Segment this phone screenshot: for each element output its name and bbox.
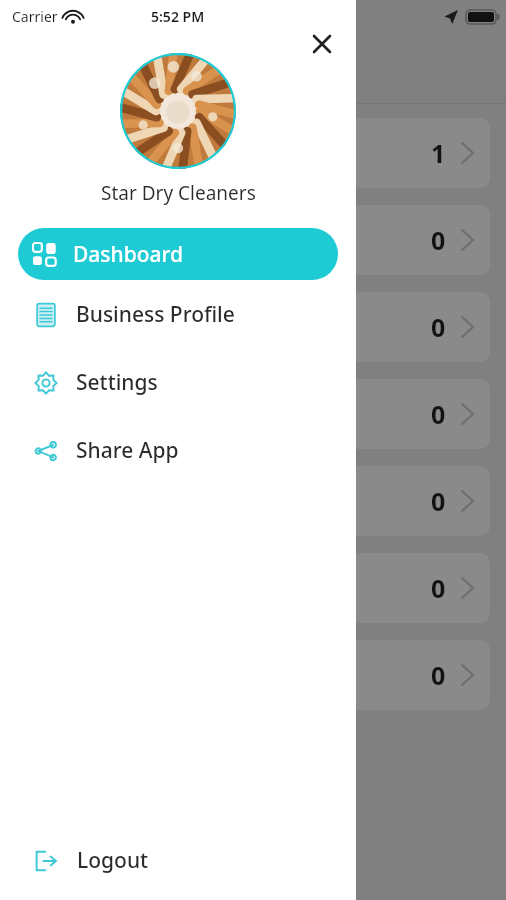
- staticText: Settings: [76, 368, 158, 397]
- staticText: Share App: [76, 436, 179, 465]
- staticText: 0: [431, 658, 446, 692]
- button[interactable]: Logout: [0, 832, 356, 888]
- button[interactable]: 0: [340, 640, 490, 710]
- button[interactable]: 1: [340, 118, 490, 188]
- staticText: 0: [431, 397, 446, 431]
- button[interactable]: Settings: [0, 348, 356, 416]
- button[interactable]: Close: [303, 34, 341, 54]
- staticText: Star Dry Cleaners: [101, 180, 256, 206]
- button[interactable]: Dashboard: [18, 228, 338, 280]
- staticText: Business Profile: [76, 300, 235, 329]
- staticText: Dashboard: [73, 240, 184, 269]
- staticText: 5:52 PM: [151, 7, 205, 26]
- button[interactable]: Business Profile: [0, 280, 356, 348]
- staticText: 0: [431, 310, 446, 344]
- button[interactable]: 0: [340, 379, 490, 449]
- staticText: 0: [431, 223, 446, 257]
- button[interactable]: 0: [340, 292, 490, 362]
- staticText: Logout: [77, 846, 149, 875]
- button[interactable]: 0: [340, 553, 490, 623]
- staticText: Carrier: [12, 7, 58, 26]
- staticText: 0: [431, 484, 446, 518]
- button[interactable]: 0: [340, 205, 490, 275]
- staticText: 0: [431, 571, 446, 605]
- staticText: 1: [431, 136, 446, 170]
- button[interactable]: Share App: [0, 416, 356, 484]
- button[interactable]: 0: [340, 466, 490, 536]
